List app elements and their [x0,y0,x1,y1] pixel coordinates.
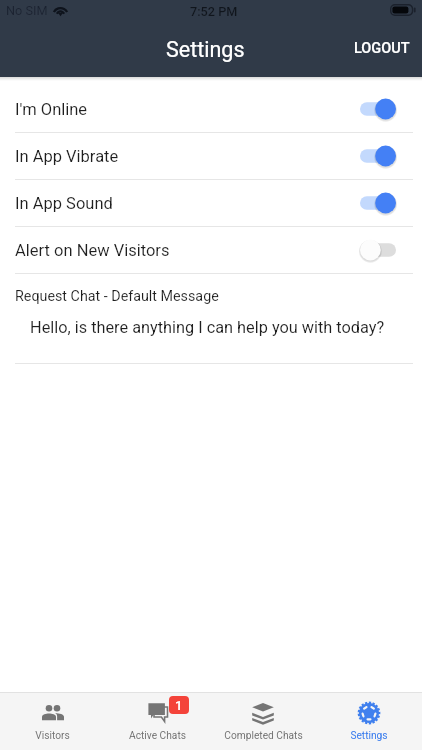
staticText: 7:52 PM [190,4,238,19]
staticText: Hello, is there anything I can help you … [30,318,385,337]
button[interactable]: 1 [105,693,210,750]
button[interactable]: Visitors [0,693,105,750]
button[interactable]: Settings [316,693,422,750]
button[interactable]: In App Sound [0,180,422,226]
staticText: Request Chat - Default Message [15,288,219,305]
staticText: Visitors [35,730,70,742]
staticText: In App Sound [15,194,113,213]
staticText: I'm Online [15,100,88,119]
button[interactable]: I'm Online [0,86,422,132]
staticText: Active Chats [129,730,186,742]
staticText: Completed Chats [224,730,303,742]
staticText: Alert on New Visitors [15,241,170,260]
staticText: In App Vibrate [15,147,119,166]
button[interactable]: Alert on New Visitors [0,227,422,273]
staticText: Settings [350,730,388,742]
button[interactable]: LOGOUT [340,32,422,67]
staticText: No SIM [6,3,48,18]
staticText: 1 [175,698,183,713]
button[interactable]: In App Vibrate [0,133,422,179]
button[interactable]: Completed Chats [210,693,316,750]
staticText: Settings [166,37,245,62]
staticText: LOGOUT [354,40,410,57]
